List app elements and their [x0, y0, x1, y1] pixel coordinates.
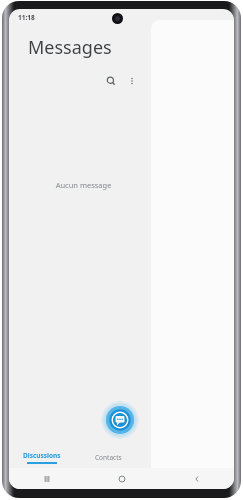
staticText: 11:18 [18, 13, 35, 22]
staticText: Contacts [95, 453, 122, 462]
button[interactable]: Discussions [9, 446, 75, 468]
button[interactable]: Search [101, 71, 121, 91]
button[interactable]: New conversation [101, 401, 139, 439]
button[interactable]: Home [84, 468, 159, 489]
button[interactable]: More options [122, 71, 142, 91]
button[interactable]: Contacts [75, 446, 142, 468]
button[interactable]: Back [159, 468, 234, 489]
staticText: Aucun message [9, 180, 158, 190]
staticText: Messages [28, 35, 112, 60]
button[interactable]: Recent apps [9, 468, 84, 489]
staticText: Discussions [23, 451, 61, 460]
